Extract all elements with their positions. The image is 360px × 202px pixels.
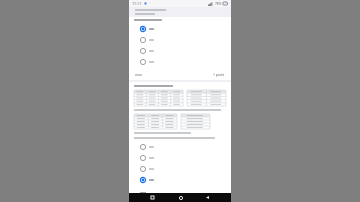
button[interactable] [134,46,226,55]
staticText: 1 point [213,72,225,77]
button[interactable] [134,142,226,151]
button[interactable] [134,164,226,173]
button[interactable]: Back [204,194,211,201]
staticText: 78% [215,2,222,6]
button[interactable]: Home [177,194,184,201]
button[interactable] [134,153,226,162]
button[interactable] [134,35,226,44]
button[interactable] [134,57,226,66]
button[interactable]: Recent apps [149,194,156,201]
button[interactable] [134,175,226,184]
button[interactable] [134,24,226,33]
staticText: 11:11 [132,1,142,6]
